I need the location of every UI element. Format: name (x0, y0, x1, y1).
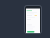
button[interactable]: Get started (27, 31, 34, 33)
